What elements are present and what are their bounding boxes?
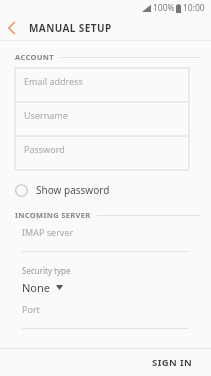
- button[interactable]: IMAP server: [0, 226, 211, 252]
- staticText: Email address: [24, 75, 83, 87]
- button[interactable]: Username: [15, 102, 189, 136]
- button[interactable]: SIGN IN: [134, 350, 211, 375]
- staticText: 100%: [153, 2, 175, 14]
- staticText: IMAP server: [22, 226, 74, 238]
- button[interactable]: Show password: [0, 179, 211, 201]
- staticText: Security type: [22, 265, 71, 276]
- staticText: 10:00: [183, 2, 205, 14]
- staticText: Port: [22, 303, 40, 315]
- staticText: Password: [24, 143, 65, 155]
- staticText: None: [22, 280, 51, 295]
- button[interactable]: Back: [0, 16, 24, 40]
- staticText: MANUAL SETUP: [29, 21, 112, 35]
- button[interactable]: Email address: [15, 68, 189, 102]
- button[interactable]: Password: [15, 136, 189, 170]
- staticText: ACCOUNT: [15, 52, 54, 62]
- button[interactable]: Security type: [0, 265, 211, 295]
- button[interactable]: Port: [0, 303, 211, 329]
- staticText: SIGN IN: [152, 356, 193, 369]
- staticText: INCOMING SERVER: [15, 210, 91, 220]
- staticText: Show password: [36, 183, 110, 197]
- staticText: Username: [24, 109, 68, 121]
